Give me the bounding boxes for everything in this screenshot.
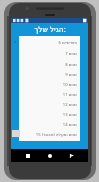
button[interactable]: Recent apps [66, 150, 77, 161]
button[interactable]: 14 שנים [22, 120, 77, 130]
staticText: 7 שנים [65, 51, 77, 57]
staticText: 11 שנים [62, 92, 77, 98]
button[interactable]: 12 שנים [22, 100, 77, 110]
button[interactable]: 8 שנים [22, 59, 77, 70]
button[interactable]: 11 שנים [22, 90, 77, 100]
staticText: 10 שנים [62, 82, 77, 88]
button[interactable]: 6 וחודשיים [22, 37, 77, 48]
button[interactable]: Back [22, 150, 33, 161]
staticText: 6 וחודשיים [58, 40, 77, 46]
button[interactable]: 10 שנים [22, 80, 77, 90]
button[interactable]: 9 שנים [22, 70, 77, 80]
staticText: הגיל שלך: [34, 24, 66, 34]
staticText: 14 שנים [62, 122, 77, 128]
staticText: 8 שנים [65, 62, 77, 68]
button[interactable]: 15 שנים ומעלה (מבוגר) [22, 130, 77, 140]
button[interactable]: 13 שנים [22, 110, 77, 120]
staticText: 15 שנים ומעלה (מבוגר) [35, 132, 77, 138]
staticText: 9 שנים [65, 72, 77, 78]
staticText: 12 שנים [62, 102, 77, 108]
button[interactable]: Home [44, 150, 55, 161]
button[interactable]: 7 שנים [22, 48, 77, 59]
staticText: 13 שנים [62, 112, 77, 118]
